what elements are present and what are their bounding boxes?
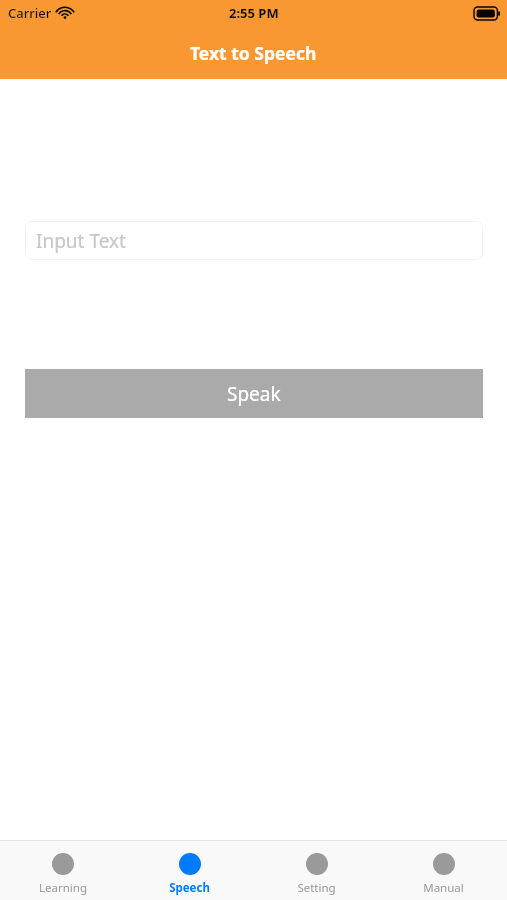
button[interactable]: Speech — [126, 841, 253, 900]
other: Manual — [433, 853, 455, 875]
staticText: Speak — [227, 381, 281, 407]
button[interactable]: Speak — [25, 369, 483, 418]
staticText: Speech — [169, 880, 210, 896]
other: Speech — [179, 853, 201, 875]
staticText: Carrier — [8, 4, 52, 22]
button[interactable]: Input Text — [25, 221, 483, 260]
staticText: Manual — [423, 880, 464, 896]
button[interactable]: Learning — [0, 841, 126, 900]
staticText: 2:55 PM — [229, 4, 279, 22]
staticText: Text to Speech — [190, 41, 317, 65]
staticText: Input Text — [36, 228, 126, 254]
button[interactable]: Setting — [253, 841, 380, 900]
other: Setting — [306, 853, 328, 875]
button[interactable]: Manual — [380, 841, 507, 900]
other: Learning — [52, 853, 74, 875]
staticText: Learning — [39, 880, 87, 896]
staticText: Setting — [297, 880, 336, 896]
